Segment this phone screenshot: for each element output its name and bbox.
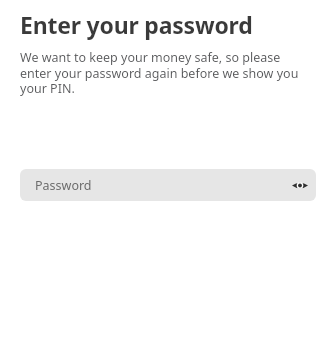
staticText: We want to keep your money safe, so plea… [20,49,314,96]
button[interactable]: Password [20,169,316,201]
staticText: Enter your password [20,9,253,40]
staticText: Password [35,177,92,194]
button[interactable]: Show password [284,169,316,201]
